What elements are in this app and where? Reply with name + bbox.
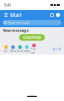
button[interactable]: Profile xyxy=(55,12,61,18)
button[interactable]: All xyxy=(2,45,9,53)
staticText: Search mail xyxy=(8,20,29,25)
button[interactable]: News xyxy=(23,45,30,53)
staticText: New message xyxy=(2,27,28,33)
staticText: See all xyxy=(52,47,61,51)
button[interactable]: Work xyxy=(9,45,16,53)
staticText: All xyxy=(4,49,8,53)
staticText: COMPOSE xyxy=(23,35,41,40)
button[interactable]: Search xyxy=(49,12,55,18)
button[interactable]: COMPOSE xyxy=(19,34,45,41)
staticText: Promo xyxy=(31,48,37,55)
staticText: Work xyxy=(10,49,16,53)
button[interactable]: Menu xyxy=(3,12,9,18)
staticText: Social xyxy=(16,49,23,53)
staticText: News xyxy=(24,49,30,53)
button[interactable]: Promo xyxy=(30,44,37,55)
button[interactable]: Social xyxy=(16,45,23,53)
staticText: Mail xyxy=(10,11,22,19)
button[interactable]: Search mail xyxy=(2,20,61,25)
staticText: 9:41 xyxy=(4,2,11,8)
